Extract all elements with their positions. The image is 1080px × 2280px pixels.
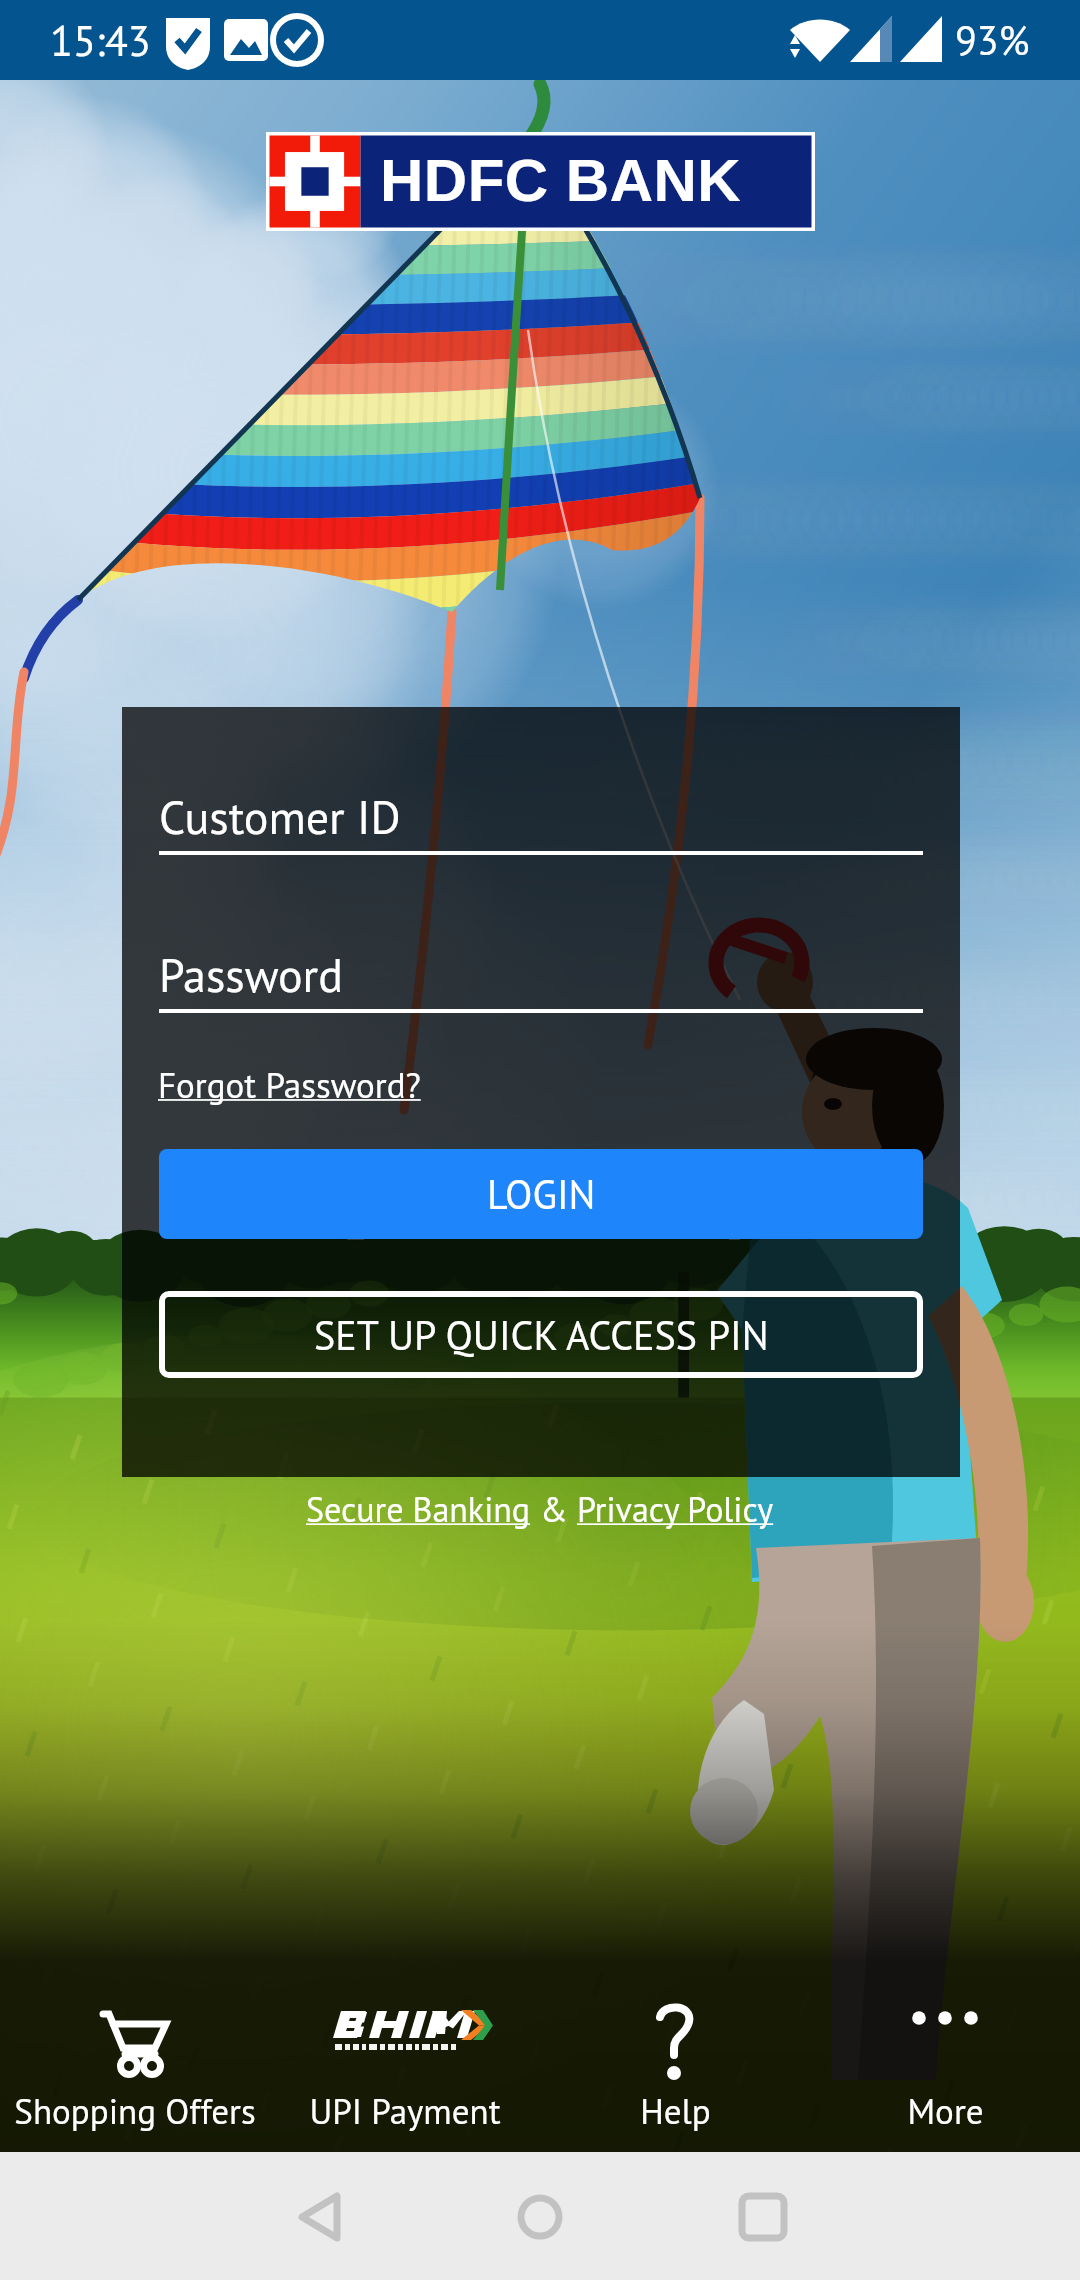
button[interactable]: Customer ID [159,787,923,857]
button[interactable]: More [810,1980,1080,2140]
button[interactable]: Forgot Password? [158,1062,421,1107]
staticText: Shopping Offers [14,2088,256,2133]
staticText: Forgot Password? [158,1062,421,1107]
staticText: UPI Payment [309,2088,501,2133]
staticText: 93% [955,14,1030,66]
staticText: LOGIN [487,1168,596,1220]
staticText: Help [640,2088,711,2133]
other: Help [555,1990,795,2090]
other: Shopping Offers [15,1990,255,2090]
button[interactable]: SET UP QUICK ACCESS PIN [159,1291,923,1378]
staticText: Password [159,945,344,1005]
button[interactable]: Password [159,945,923,1015]
staticText: 15:43 [50,13,151,67]
staticText: More [907,2088,984,2133]
button[interactable]: Back [270,2152,370,2252]
staticText: SET UP QUICK ACCESS PIN [314,1309,769,1361]
other: More [825,1990,1065,2090]
button[interactable]: Privacy Policy [577,1487,774,1531]
button[interactable]: UPI Payment [270,1980,540,2140]
button[interactable]: Recent apps [712,2152,812,2252]
button[interactable]: Help [540,1980,810,2140]
other: UPI Payment [285,1990,525,2090]
staticText: HDFC BANK [380,147,742,214]
staticText: & [531,1487,577,1531]
button[interactable]: LOGIN [159,1149,923,1239]
button[interactable]: Shopping Offers [0,1980,270,2140]
staticText: Customer ID [159,787,401,847]
button[interactable]: Home [490,2152,590,2252]
button[interactable]: Secure Banking [306,1487,531,1531]
